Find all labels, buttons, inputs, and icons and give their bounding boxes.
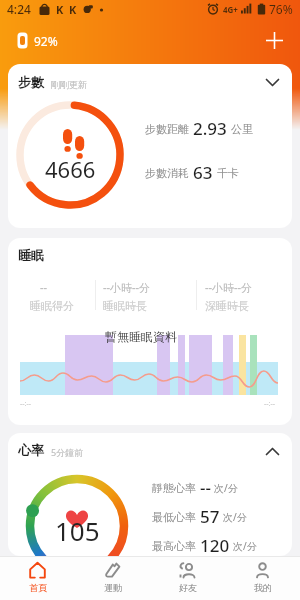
staticText: 步數 <box>18 74 44 90</box>
staticText: 4G+ <box>223 4 238 15</box>
staticText: 睡眠得分 <box>30 299 74 313</box>
staticText: 睡眠 <box>18 247 44 263</box>
staticText: 5分鐘前 <box>51 446 84 458</box>
button[interactable] <box>260 439 284 463</box>
button[interactable]: 心率 <box>8 433 292 556</box>
staticText: 心率 <box>18 442 44 458</box>
staticText: 深睡時長 <box>205 299 249 313</box>
staticText: 120 <box>200 534 230 556</box>
staticText: 公里 <box>231 122 253 136</box>
button[interactable] <box>262 28 286 52</box>
button[interactable]: 92% <box>17 32 58 49</box>
staticText: 92% <box>34 33 58 49</box>
staticText: 好友 <box>179 582 197 593</box>
button[interactable]: 睡眠 <box>8 238 292 425</box>
staticText: 暫無睡眠資料 <box>105 329 177 344</box>
staticText: 靜態心率 <box>152 481 196 495</box>
staticText: 首頁 <box>29 582 47 593</box>
staticText: 運動 <box>104 582 122 593</box>
button[interactable]: 運動 <box>75 557 150 600</box>
staticText: 睡眠時長 <box>103 299 147 313</box>
staticText: 千卡 <box>217 166 239 180</box>
button[interactable]: 我的 <box>225 557 300 600</box>
staticText: --小時--分 <box>205 280 253 295</box>
button[interactable]: 步數 <box>8 64 292 228</box>
staticText: 4666 <box>45 154 96 184</box>
staticText: --小時--分 <box>103 280 151 295</box>
staticText: 最高心率 <box>152 539 196 553</box>
staticText: -- <box>200 476 211 499</box>
staticText: K <box>69 2 77 17</box>
staticText: 105 <box>55 513 100 548</box>
staticText: --:-- <box>264 399 275 409</box>
staticText: K <box>56 2 64 17</box>
staticText: 我的 <box>254 582 272 593</box>
staticText: 2.93 <box>193 117 227 140</box>
staticText: 4:24 <box>7 1 31 17</box>
staticText: 57 <box>200 505 220 528</box>
staticText: 次/分 <box>223 510 247 524</box>
staticText: --:-- <box>20 399 31 409</box>
staticText: 次/分 <box>233 539 257 553</box>
button[interactable] <box>260 70 284 94</box>
staticText: 剛剛更新 <box>51 79 87 90</box>
staticText: 76% <box>269 1 293 17</box>
button[interactable]: 好友 <box>150 557 225 600</box>
button[interactable]: 首頁 <box>0 557 75 600</box>
staticText: -- <box>40 280 48 295</box>
staticText: 步數消耗 <box>145 166 189 180</box>
staticText: 最低心率 <box>152 510 196 524</box>
staticText: 步數距離 <box>145 122 189 136</box>
staticText: 次/分 <box>214 481 238 495</box>
staticText: 63 <box>193 161 213 184</box>
